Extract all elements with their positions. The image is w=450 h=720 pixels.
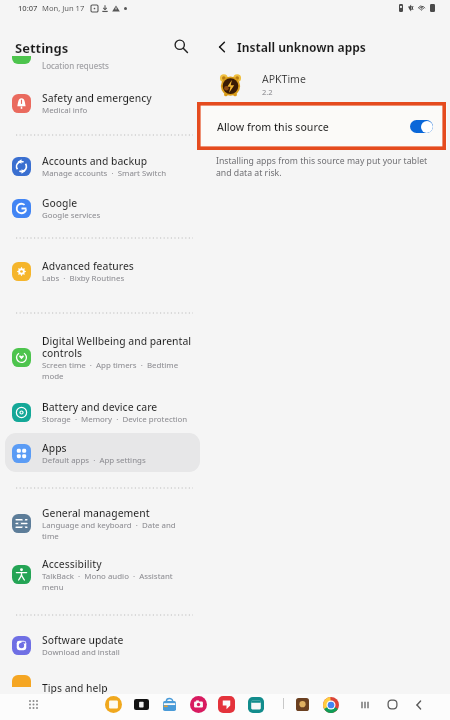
button[interactable]: Safety and emergency — [12, 77, 194, 129]
staticText: Advanced features — [42, 259, 194, 273]
staticText: Software update — [42, 633, 194, 647]
staticText: Screen time · App timers · Bedtime mode — [42, 360, 182, 381]
button[interactable]: Accounts and backup — [12, 140, 194, 192]
button[interactable]: Back — [409, 695, 428, 714]
button[interactable]: Battery and device care — [12, 386, 194, 438]
button[interactable]: Advanced features — [12, 245, 194, 297]
button[interactable]: Recent app — [293, 695, 312, 714]
staticText: Apps — [42, 441, 194, 455]
staticText: Digital Wellbeing and parental controls — [42, 334, 194, 360]
button[interactable]: Wallet — [132, 695, 151, 714]
staticText: Settings — [15, 39, 69, 57]
staticText: Storage · Memory · Device protection — [42, 414, 194, 425]
button[interactable]: Chrome — [321, 695, 340, 714]
button[interactable]: General management — [12, 497, 194, 549]
staticText: Manage accounts · Smart Switch — [42, 168, 194, 179]
button[interactable]: All apps — [24, 695, 43, 714]
button[interactable]: Apps — [12, 427, 194, 479]
button[interactable]: Accessibility — [12, 548, 194, 600]
button[interactable]: Calendar — [246, 695, 265, 714]
button[interactable]: Camera — [189, 695, 208, 714]
staticText: Default apps · App settings — [42, 455, 194, 466]
staticText: 2.2 — [262, 87, 273, 97]
button[interactable]: APKTime — [212, 68, 432, 100]
staticText: Safety and emergency — [42, 91, 194, 105]
staticText: General management — [42, 506, 194, 520]
staticText: Google services — [42, 210, 194, 221]
staticText: 10:07 — [18, 3, 38, 13]
button[interactable]: Store — [160, 695, 179, 714]
staticText: Accounts and backup — [42, 154, 194, 168]
staticText: Allow from this source — [217, 120, 329, 134]
button[interactable]: Search — [168, 33, 194, 59]
staticText: Install unknown apps — [237, 39, 366, 55]
staticText: APKTime — [262, 72, 306, 86]
staticText: Tips and help — [42, 681, 108, 695]
staticText: Battery and device care — [42, 400, 194, 414]
staticText: Installing apps from this source may put… — [216, 155, 428, 167]
staticText: Google — [42, 196, 194, 210]
button[interactable]: Messages — [217, 695, 236, 714]
staticText: TalkBack · Mono audio · Assistant menu — [42, 571, 182, 592]
other: Allow from this source toggle — [410, 120, 433, 133]
staticText: Labs · Bixby Routines — [42, 273, 194, 284]
staticText: Mon, Jun 17 — [42, 3, 85, 13]
button[interactable]: Digital Wellbeing and parental controls — [12, 331, 194, 383]
staticText: Download and install — [42, 647, 194, 658]
button[interactable]: Back — [209, 34, 235, 60]
staticText: Location requests — [42, 60, 109, 71]
button[interactable]: Google — [12, 182, 194, 234]
staticText: Accessibility — [42, 557, 194, 571]
button[interactable]: Samsung Internet — [104, 695, 123, 714]
button[interactable]: Recents — [355, 695, 374, 714]
staticText: Medical info — [42, 105, 194, 116]
button[interactable]: Software update — [12, 619, 194, 671]
button[interactable] — [5, 433, 200, 472]
button[interactable]: Allow from this source — [199, 104, 447, 148]
button[interactable]: Home — [383, 695, 402, 714]
staticText: and data at risk. — [216, 167, 282, 179]
staticText: Language and keyboard · Date and time — [42, 520, 180, 541]
